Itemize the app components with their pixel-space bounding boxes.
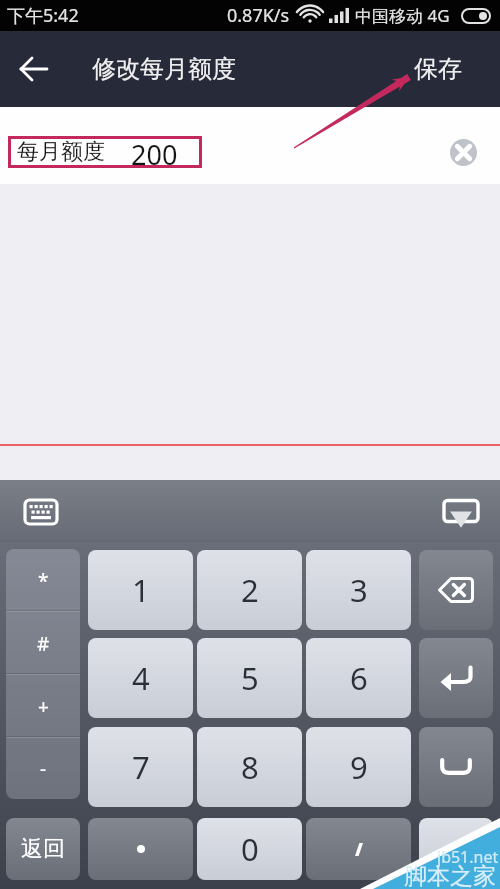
staticText: 返回 [21,835,65,863]
staticText: 每月额度 [17,138,105,166]
button[interactable]: 返回 [6,818,80,880]
staticText: + [38,694,49,720]
button[interactable]: 9 [306,727,411,807]
button[interactable]: 0 [197,818,302,880]
button[interactable]: 3 [306,550,411,630]
button[interactable]: * [6,549,80,612]
button[interactable]: Back [13,48,55,90]
button[interactable]: 8 [197,727,302,807]
button[interactable]: 6 [306,638,411,718]
button[interactable]: # [6,612,80,675]
staticText: 2 [241,569,259,611]
staticText: 修改每月额度 [92,54,236,84]
staticText: 0 [241,828,259,870]
button[interactable]: Comma [306,818,411,880]
button[interactable] [419,818,493,880]
button[interactable]: - [6,738,80,799]
staticText: - [40,756,47,782]
staticText: 0.87K/s [227,3,290,28]
button[interactable]: Space [419,727,493,807]
staticText: 中国移动 4G [355,4,450,27]
staticText: 5 [241,657,259,699]
button[interactable]: 5 [197,638,302,718]
button[interactable]: Clear [450,139,477,166]
staticText: 保存 [414,54,462,84]
staticText: # [37,631,50,657]
button[interactable]: 7 [88,727,193,807]
button[interactable]: 2 [197,550,302,630]
button[interactable]: Hide keyboard [441,492,481,532]
button[interactable]: Backspace [419,550,493,630]
button[interactable] [88,818,193,880]
button[interactable]: + [6,675,80,738]
staticText: * [38,568,49,594]
staticText: 4 [132,657,150,699]
staticText: 脚本之家 [404,862,496,889]
staticText: 下午5:42 [7,3,79,28]
button[interactable]: Enter [419,638,493,718]
button[interactable]: 1 [88,550,193,630]
staticText: 3 [350,569,368,611]
button[interactable]: 保存 [404,46,472,92]
staticText: 7 [132,746,150,788]
button[interactable]: 4 [88,638,193,718]
staticText: 200 [131,136,178,168]
staticText: 1 [132,569,150,611]
button[interactable]: 每月额度 [8,136,202,168]
staticText: jb51.net [437,846,499,868]
button[interactable]: Switch keyboard [21,492,61,532]
staticText: 9 [350,746,368,788]
staticText: 6 [350,657,368,699]
staticText: 8 [241,746,259,788]
